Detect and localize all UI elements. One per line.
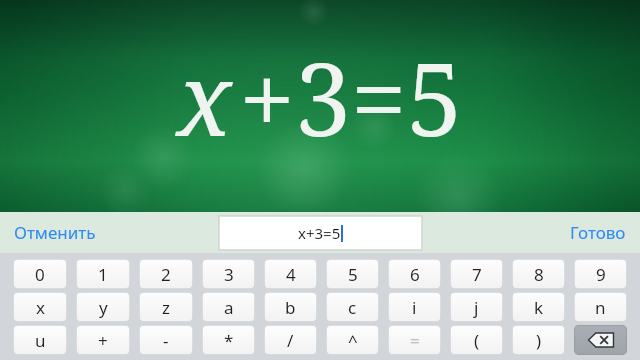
- staticText: *: [224, 329, 234, 352]
- staticText: -: [163, 329, 169, 352]
- staticText: b: [285, 296, 296, 319]
- staticText: x: [36, 296, 45, 319]
- staticText: 8: [534, 263, 544, 286]
- staticText: j: [474, 296, 479, 319]
- button[interactable]: 5: [326, 259, 379, 289]
- button[interactable]: Backspace: [574, 325, 627, 355]
- button[interactable]: Отменить: [0, 213, 110, 252]
- staticText: ): [536, 329, 542, 352]
- staticText: 5: [348, 263, 358, 286]
- staticText: 6: [410, 263, 420, 286]
- button[interactable]: n: [574, 292, 627, 322]
- staticText: u: [35, 329, 46, 352]
- staticText: ^: [348, 329, 358, 352]
- button[interactable]: a: [202, 292, 255, 322]
- button[interactable]: 3: [202, 259, 255, 289]
- staticText: +3=5: [239, 29, 463, 165]
- staticText: 2: [161, 263, 171, 286]
- button[interactable]: x+3=5: [219, 216, 422, 250]
- button[interactable]: z: [139, 292, 193, 322]
- staticText: n: [595, 296, 606, 319]
- button[interactable]: j: [450, 292, 503, 322]
- staticText: Готово: [570, 221, 626, 244]
- staticText: y: [99, 296, 108, 319]
- staticText: 0: [35, 263, 45, 286]
- button[interactable]: i: [388, 292, 441, 322]
- button[interactable]: 7: [450, 259, 503, 289]
- staticText: =: [410, 329, 420, 352]
- staticText: Отменить: [14, 221, 96, 244]
- button[interactable]: -: [139, 325, 193, 355]
- button[interactable]: =: [388, 325, 441, 355]
- button[interactable]: /: [264, 325, 317, 355]
- staticText: 9: [596, 263, 606, 286]
- staticText: x: [177, 29, 232, 165]
- button[interactable]: 6: [388, 259, 441, 289]
- staticText: 7: [472, 263, 482, 286]
- button[interactable]: +: [76, 325, 130, 355]
- button[interactable]: 1: [76, 259, 130, 289]
- staticText: a: [224, 296, 234, 319]
- staticText: 1: [98, 263, 108, 286]
- button[interactable]: u: [13, 325, 67, 355]
- button[interactable]: ): [512, 325, 565, 355]
- button[interactable]: (: [450, 325, 503, 355]
- button[interactable]: c: [326, 292, 379, 322]
- button[interactable]: 0: [13, 259, 67, 289]
- button[interactable]: *: [202, 325, 255, 355]
- button[interactable]: 8: [512, 259, 565, 289]
- staticText: (: [474, 329, 480, 352]
- button[interactable]: b: [264, 292, 317, 322]
- button[interactable]: x: [13, 292, 67, 322]
- button[interactable]: 9: [574, 259, 627, 289]
- staticText: 3: [224, 263, 234, 286]
- button[interactable]: y: [76, 292, 130, 322]
- button[interactable]: k: [512, 292, 565, 322]
- staticText: z: [162, 296, 170, 319]
- staticText: c: [348, 296, 357, 319]
- staticText: /: [287, 329, 294, 352]
- staticText: +: [98, 329, 108, 352]
- staticText: i: [412, 296, 417, 319]
- button[interactable]: Готово: [556, 213, 640, 252]
- staticText: 4: [286, 263, 296, 286]
- button[interactable]: 2: [139, 259, 193, 289]
- button[interactable]: 4: [264, 259, 317, 289]
- staticText: x+3=5: [298, 223, 341, 243]
- staticText: k: [534, 296, 544, 319]
- button[interactable]: ^: [326, 325, 379, 355]
